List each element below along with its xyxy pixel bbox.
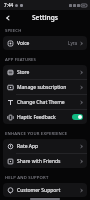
staticText: ENHANCE YOUR EXPERIENCE <box>5 131 68 137</box>
staticText: Change Chat Theme <box>17 99 80 106</box>
staticText: Store <box>17 69 80 76</box>
button[interactable]: Store <box>3 65 87 79</box>
button[interactable]: Haptic Feedback <box>3 110 87 124</box>
button[interactable]: Change Chat Theme <box>3 95 87 109</box>
staticText: HELP AND SUPPORT <box>5 175 49 181</box>
staticText: Share with Friends <box>17 158 80 165</box>
staticText: Haptic Feedback <box>17 114 72 121</box>
staticText: Rate App <box>17 143 80 150</box>
staticText: Settings <box>32 13 58 22</box>
staticText: Voice <box>17 40 68 47</box>
button[interactable]: Customer Support <box>3 183 87 197</box>
button[interactable]: Manage subscription <box>3 80 87 94</box>
button[interactable]: Share with Friends <box>3 154 87 168</box>
staticText: 7:44 <box>4 2 14 8</box>
staticText: Manage subscription <box>17 84 80 91</box>
button[interactable]: Haptic Feedback toggle <box>72 114 83 120</box>
button[interactable]: Voice <box>3 36 87 50</box>
staticText: SPEECH <box>5 28 22 34</box>
staticText: Lyra <box>68 40 78 46</box>
staticText: APP FEATURES <box>5 57 37 63</box>
staticText: Customer Support <box>17 187 80 194</box>
button[interactable]: Rate App <box>3 139 87 153</box>
button[interactable]: Back <box>2 12 14 24</box>
